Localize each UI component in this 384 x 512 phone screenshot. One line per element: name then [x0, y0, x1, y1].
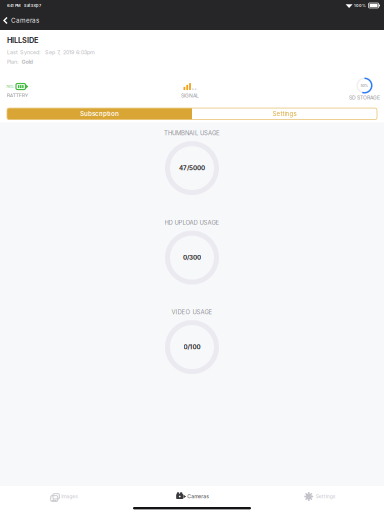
button[interactable]: Cameras	[128, 491, 256, 502]
staticText: 6:41 PM	[7, 3, 21, 8]
staticText: Cameras	[187, 493, 209, 499]
staticText: Cameras	[11, 17, 39, 24]
staticText: BATTERY	[7, 92, 28, 99]
staticText: 0/100	[183, 343, 200, 351]
staticText: 100%	[354, 3, 366, 8]
staticText: THUMBNAIL USAGE	[164, 129, 220, 137]
staticText: HILLSIDE	[7, 36, 38, 45]
staticText: Last Synced:	[7, 49, 41, 55]
staticText: Images	[61, 493, 78, 499]
staticText: Gold	[21, 58, 32, 65]
staticText: Plan:	[7, 58, 19, 65]
staticText: HD UPLOAD USAGE	[164, 219, 219, 226]
staticText: Settings	[316, 493, 336, 499]
staticText: VIDEO USAGE	[171, 308, 212, 316]
staticText: Subscription	[80, 110, 119, 117]
staticText: 76%	[6, 84, 14, 89]
staticText: Sat Sep 7	[24, 3, 41, 8]
staticText: 47/5000	[179, 164, 205, 172]
button[interactable]: Subscription	[7, 108, 192, 120]
staticText: Settings	[272, 110, 296, 117]
button[interactable]: Cameras	[0, 11, 384, 30]
button[interactable]: Images	[0, 491, 128, 502]
button[interactable]: Settings	[256, 491, 384, 502]
button[interactable]: Settings	[192, 108, 377, 120]
staticText: Sep 7, 2019 6:03pm	[45, 49, 95, 55]
staticText: SIGNAL	[181, 92, 199, 99]
staticText: SD STORAGE	[349, 94, 380, 101]
staticText: 0/300	[183, 254, 201, 261]
staticText: 50%	[360, 83, 368, 88]
